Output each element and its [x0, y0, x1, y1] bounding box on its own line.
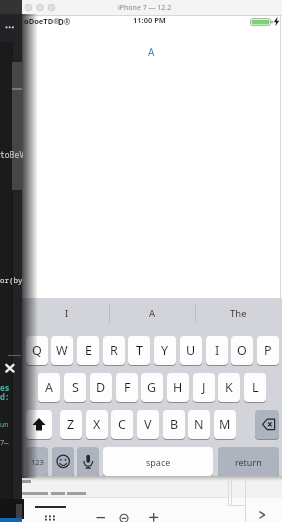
- staticText: R: [110, 342, 118, 359]
- staticText: A: [45, 379, 53, 396]
- staticText: K: [225, 379, 233, 396]
- button[interactable]: [26, 410, 52, 439]
- button[interactable]: A: [38, 373, 60, 402]
- button[interactable]: E: [77, 336, 99, 365]
- staticText: es: [0, 382, 10, 393]
- staticText: 11:00 PM: [133, 15, 166, 25]
- button[interactable]: G: [141, 373, 163, 402]
- button[interactable]: C: [111, 410, 133, 439]
- staticText: return: [235, 456, 262, 468]
- button[interactable]: M: [214, 410, 236, 439]
- staticText: O: [237, 342, 247, 359]
- staticText: H: [173, 379, 183, 396]
- staticText: U: [186, 342, 196, 359]
- button[interactable]: U: [180, 336, 202, 365]
- staticText: T: [136, 342, 143, 359]
- button[interactable]: L: [244, 373, 266, 402]
- staticText: 7—: [0, 438, 9, 448]
- staticText: The: [230, 307, 247, 320]
- button[interactable]: space: [103, 447, 213, 476]
- staticText: iPhone 7 — 12.2: [118, 3, 172, 13]
- staticText: un: [0, 420, 9, 430]
- button[interactable]: R: [103, 336, 125, 365]
- staticText: W: [56, 342, 68, 359]
- staticText: P: [264, 342, 272, 359]
- staticText: A: [148, 45, 155, 58]
- staticText: G: [147, 379, 157, 396]
- button[interactable]: O: [231, 336, 253, 365]
- button[interactable]: [52, 447, 74, 476]
- staticText: A: [149, 307, 156, 320]
- staticText: oDoeTD®: [24, 16, 60, 26]
- staticText: L: [252, 379, 259, 396]
- staticText: C: [118, 416, 126, 433]
- staticText: I: [65, 307, 69, 320]
- button[interactable]: V: [137, 410, 159, 439]
- staticText: S: [72, 379, 79, 396]
- button[interactable]: Y: [154, 336, 176, 365]
- button[interactable]: Z: [60, 410, 82, 439]
- button[interactable]: [255, 410, 279, 439]
- button[interactable]: 123: [26, 447, 48, 476]
- button[interactable]: Q: [26, 336, 48, 365]
- button[interactable]: B: [163, 410, 185, 439]
- button[interactable]: T: [128, 336, 150, 365]
- button[interactable]: return: [218, 447, 279, 476]
- button[interactable]: P: [257, 336, 279, 365]
- staticText: Q: [32, 342, 42, 359]
- staticText: F: [124, 379, 131, 396]
- button[interactable]: S: [64, 373, 86, 402]
- button[interactable]: H: [167, 373, 189, 402]
- button[interactable]: K: [218, 373, 240, 402]
- staticText: Z: [67, 416, 75, 433]
- button[interactable]: N: [188, 410, 210, 439]
- staticText: or(by: [0, 275, 22, 285]
- button[interactable]: I: [206, 336, 228, 365]
- button[interactable]: [77, 447, 99, 476]
- button[interactable]: X: [86, 410, 108, 439]
- button[interactable]: J: [193, 373, 215, 402]
- staticText: B: [170, 416, 179, 433]
- button[interactable]: D: [90, 373, 112, 402]
- staticText: E: [85, 342, 92, 359]
- button[interactable]: F: [116, 373, 138, 402]
- staticText: toBeV: [0, 149, 23, 160]
- staticText: Y: [161, 342, 169, 359]
- staticText: d:: [0, 391, 10, 402]
- staticText: X: [93, 416, 101, 433]
- staticText: J: [202, 379, 206, 396]
- staticText: I: [215, 342, 220, 359]
- staticText: space: [146, 456, 171, 468]
- staticText: V: [144, 416, 152, 433]
- staticText: 123: [31, 457, 44, 467]
- staticText: D: [96, 379, 106, 396]
- staticText: N: [194, 416, 204, 433]
- staticText: D®: [58, 16, 71, 27]
- staticText: M: [219, 416, 231, 433]
- button[interactable]: W: [51, 336, 73, 365]
